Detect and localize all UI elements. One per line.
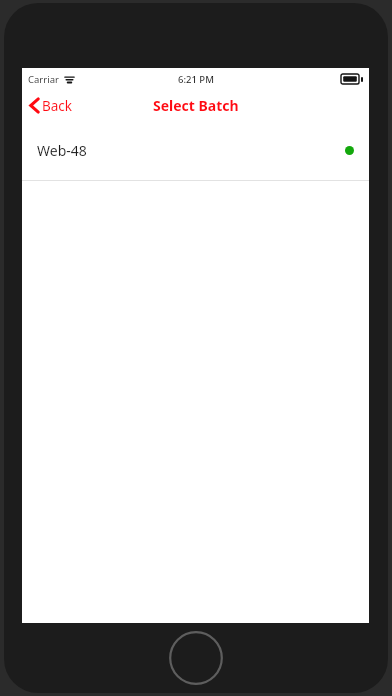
staticText: Web-48: [37, 141, 87, 160]
button[interactable]: Web-48: [22, 121, 369, 180]
staticText: Back: [42, 97, 73, 115]
staticText: 6:21 PM: [178, 73, 214, 86]
staticText: Carriar: [28, 73, 59, 86]
button[interactable]: Home: [169, 631, 223, 685]
staticText: Select Batch: [153, 96, 239, 115]
button[interactable]: Back: [22, 90, 83, 121]
